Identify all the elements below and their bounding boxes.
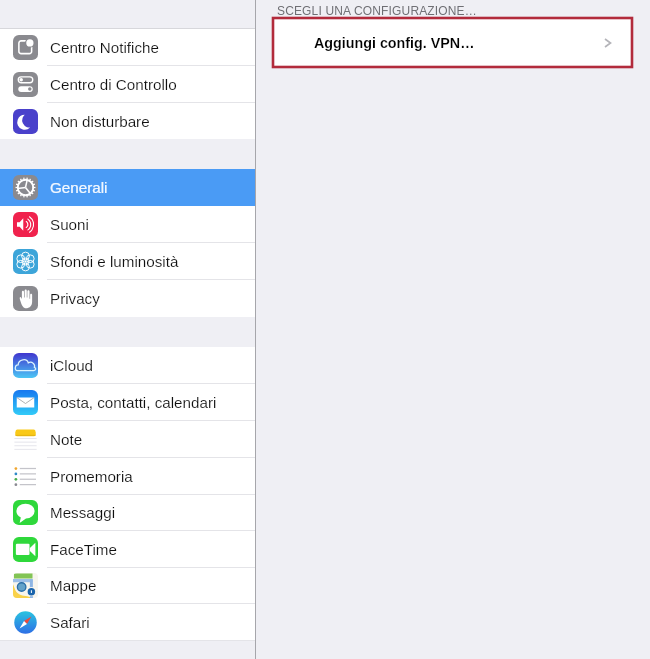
button[interactable]: FaceTime [0,531,255,567]
staticText: Generali [50,179,108,196]
button[interactable]: Centro di Controllo [0,66,255,102]
staticText: Posta, contatti, calendari [50,394,217,411]
button[interactable]: Aggiungi configurazione VPN [274,19,631,66]
staticText: Privacy [50,290,100,307]
staticText: Mappe [50,577,97,594]
button[interactable]: Promemoria [0,458,255,494]
staticText: Non disturbare [50,113,150,130]
button[interactable]: Centro Notifiche [0,29,255,65]
staticText: iCloud [50,357,94,374]
staticText: Promemoria [50,468,133,485]
button[interactable]: iCloud [0,347,255,383]
button[interactable]: Messaggi [0,495,255,530]
staticText: Suoni [50,216,89,233]
staticText: Centro Notifiche [50,39,159,56]
button[interactable]: Safari [0,604,255,640]
button[interactable]: Note [0,421,255,457]
button[interactable]: Posta, contatti, calendari [0,384,255,420]
staticText: Centro di Controllo [50,76,177,93]
staticText: SCEGLI UNA CONFIGURAZIONE… [277,4,477,17]
staticText: Safari [50,614,90,631]
button[interactable]: Generali [0,169,255,206]
button[interactable]: Non disturbare [0,103,255,139]
staticText: Messaggi [50,504,115,521]
button[interactable]: Mappe [0,568,255,603]
staticText: Note [50,431,83,448]
button[interactable]: Suoni [0,206,255,242]
staticText: Sfondi e luminosità [50,253,179,270]
staticText: FaceTime [50,541,117,558]
staticText: Aggiungi config. VPN… [314,35,475,51]
button[interactable]: Privacy [0,280,255,316]
button[interactable]: Sfondi e luminosità [0,243,255,279]
